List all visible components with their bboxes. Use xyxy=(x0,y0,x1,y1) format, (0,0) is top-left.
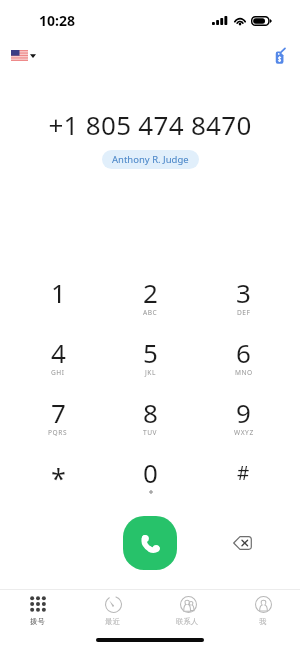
button[interactable]: * xyxy=(12,443,104,503)
button[interactable]: 1 xyxy=(12,263,104,323)
staticText: * xyxy=(51,460,66,497)
staticText: 4 xyxy=(51,335,66,370)
staticText: 2 xyxy=(143,275,158,310)
button[interactable]: 拨号 xyxy=(0,590,75,630)
staticText: 我 xyxy=(259,617,267,626)
staticText: 联系人 xyxy=(176,617,199,626)
button[interactable]: 联系人 xyxy=(150,590,225,630)
staticText: WXYZ xyxy=(234,428,254,437)
button[interactable]: 5 xyxy=(104,323,197,383)
staticText: 1 xyxy=(51,275,66,310)
staticText: 10:28 xyxy=(39,11,75,30)
staticText: 6 xyxy=(236,335,251,370)
staticText: 9 xyxy=(236,395,251,430)
button[interactable]: 最近 xyxy=(75,590,150,630)
button[interactable]: Call xyxy=(123,516,177,570)
button[interactable]: Promotions xyxy=(272,46,287,66)
button[interactable]: 0 xyxy=(104,443,197,503)
button[interactable]: Country code xyxy=(7,46,40,65)
button[interactable]: 8 xyxy=(104,383,197,443)
staticText: JKL xyxy=(145,368,156,377)
staticText: GHI xyxy=(51,368,65,377)
button[interactable]: 7 xyxy=(12,383,104,443)
staticText: 5 xyxy=(143,335,158,370)
staticText: PQRS xyxy=(48,428,68,437)
staticText: 7 xyxy=(51,395,66,430)
other: Country code xyxy=(11,50,28,61)
staticText: Anthony R. Judge xyxy=(112,153,189,166)
button[interactable]: 4 xyxy=(12,323,104,383)
staticText: DEF xyxy=(237,308,251,317)
button[interactable]: 3 xyxy=(197,263,290,323)
staticText: 最近 xyxy=(105,617,120,626)
staticText: TUV xyxy=(143,428,158,437)
button[interactable]: 9 xyxy=(197,383,290,443)
staticText: 3 xyxy=(236,275,251,310)
button[interactable]: 我 xyxy=(225,590,300,630)
button[interactable]: # xyxy=(197,443,290,503)
staticText: ABC xyxy=(143,308,158,317)
staticText: 拨号 xyxy=(30,617,45,626)
button[interactable]: 2 xyxy=(104,263,197,323)
button[interactable]: 6 xyxy=(197,323,290,383)
staticText: # xyxy=(237,460,250,486)
staticText: 0 xyxy=(143,455,158,490)
button[interactable]: Delete xyxy=(227,530,258,556)
staticText: +1 805 474 8470 xyxy=(48,107,252,142)
staticText: 8 xyxy=(143,395,158,430)
button[interactable]: Anthony R. Judge xyxy=(102,150,199,169)
staticText: MNO xyxy=(235,368,253,377)
